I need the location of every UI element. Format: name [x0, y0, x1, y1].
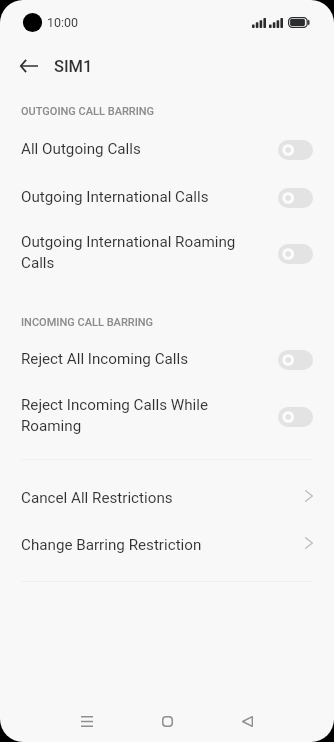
staticText: Outgoing International Roaming Calls	[21, 233, 259, 271]
staticText: Reject Incoming Calls While Roaming	[21, 396, 259, 434]
button[interactable]: Reject Incoming Calls While Roaming	[0, 382, 334, 451]
staticText: INCOMING CALL BARRING	[21, 316, 154, 329]
button[interactable]: Back	[227, 701, 267, 741]
button[interactable]: Outgoing International Calls	[0, 174, 334, 222]
button[interactable]: Navigate up	[11, 48, 47, 84]
staticText: Change Barring Restriction	[21, 536, 202, 554]
staticText: Cancel All Restrictions	[21, 489, 173, 507]
button[interactable]: Recent apps	[67, 701, 107, 741]
staticText: Outgoing International Calls	[21, 188, 259, 206]
button[interactable]: All Outgoing Calls	[0, 126, 334, 174]
staticText: All Outgoing Calls	[21, 140, 259, 158]
button[interactable]: Reject All Incoming Calls	[0, 336, 334, 384]
staticText: SIM1	[54, 57, 93, 76]
staticText: OUTGOING CALL BARRING	[21, 105, 155, 118]
button[interactable]: Outgoing International Roaming Calls	[0, 219, 334, 288]
staticText: 10:00	[47, 15, 79, 30]
staticText: Reject All Incoming Calls	[21, 350, 259, 368]
button[interactable]: Change Barring Restriction	[0, 522, 334, 570]
button[interactable]: Cancel All Restrictions	[0, 475, 334, 523]
button[interactable]: Home	[147, 701, 187, 741]
